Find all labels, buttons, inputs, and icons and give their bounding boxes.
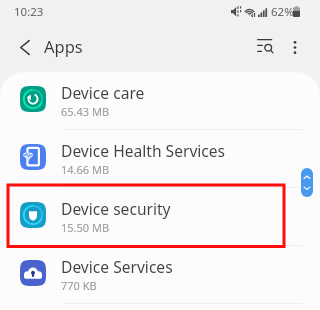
staticText: 62% xyxy=(271,4,294,20)
staticText: 65.43 MB xyxy=(61,104,110,119)
staticText: Device care xyxy=(61,82,145,103)
button[interactable]: Device security xyxy=(0,188,320,246)
button[interactable]: Fast scroll xyxy=(301,168,313,197)
staticText: Device Health Services xyxy=(61,140,226,161)
button[interactable]: Device Services xyxy=(0,246,320,304)
button[interactable]: More options xyxy=(277,23,315,71)
staticText: 10:23 xyxy=(14,4,44,20)
staticText: 15.50 MB xyxy=(61,220,110,235)
staticText: 770 KB xyxy=(61,278,97,293)
button[interactable]: Back xyxy=(0,23,44,71)
staticText: Apps xyxy=(44,35,83,57)
staticText: Device security xyxy=(61,198,171,219)
staticText: Device Services xyxy=(61,256,173,277)
button[interactable]: Device Health Services xyxy=(0,130,320,188)
button[interactable]: Device care xyxy=(0,72,320,130)
button[interactable]: Search xyxy=(235,23,277,71)
staticText: 14.66 MB xyxy=(61,162,110,177)
